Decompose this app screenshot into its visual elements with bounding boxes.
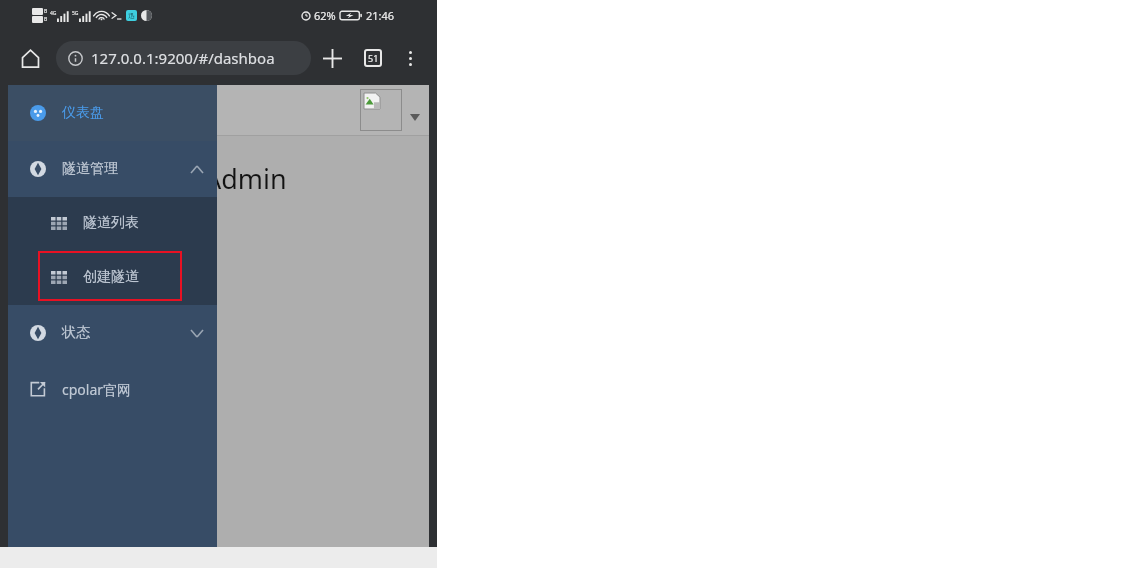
button[interactable]: New tab	[311, 37, 353, 79]
staticText: B	[44, 16, 48, 23]
staticText: 5G	[72, 10, 79, 17]
button[interactable]: Tabs	[353, 38, 393, 78]
button[interactable]: 状态	[8, 305, 217, 361]
staticText: 迅	[128, 11, 135, 20]
staticText: 21:46	[366, 8, 395, 23]
staticText: cpolar官网	[62, 380, 132, 399]
button[interactable]: User avatar	[360, 89, 402, 131]
button[interactable]: cpolar官网	[8, 361, 217, 417]
staticText: Admin	[204, 160, 287, 197]
staticText: 62%	[314, 8, 336, 23]
button[interactable]: Home	[10, 38, 50, 78]
button[interactable]: 创建隧道	[8, 249, 217, 305]
button[interactable]: 127.0.0.1:9200/#/dashboa	[56, 41, 311, 75]
button[interactable]: More options	[393, 41, 427, 75]
staticText: 状态	[62, 324, 90, 342]
button[interactable]: 仪表盘	[8, 85, 217, 141]
staticText: 创建隧道	[83, 268, 139, 286]
staticText: 51	[368, 52, 379, 64]
button[interactable]: 隧道管理	[8, 141, 217, 197]
staticText: 仪表盘	[62, 104, 104, 122]
staticText: 隧道管理	[62, 160, 118, 178]
staticText: B	[44, 8, 48, 15]
staticText: 4G	[50, 10, 57, 17]
staticText: 127.0.0.1:9200/#/dashboa	[91, 48, 275, 68]
button[interactable]: 隧道列表	[8, 197, 217, 249]
staticText: 隧道列表	[83, 214, 139, 232]
